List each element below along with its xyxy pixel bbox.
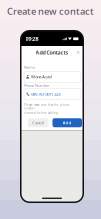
staticText: Please make sure that the phone number (24, 103, 70, 110)
staticText: Add (63, 120, 72, 125)
staticText: Create new contact (7, 5, 94, 17)
staticText: Name (24, 64, 35, 70)
button[interactable]: Cancel (28, 118, 48, 127)
staticText: Phone Number (24, 83, 50, 88)
staticText: Mona Azad (31, 74, 51, 79)
button[interactable]: Close (75, 48, 81, 56)
staticText: is correct before adding. (24, 111, 59, 115)
staticText: 09:28 (25, 35, 38, 42)
staticText: Cancel (32, 120, 44, 125)
staticText: Add Contacts (35, 49, 68, 56)
button[interactable]: Add (52, 118, 82, 127)
staticText: 089 761 0011 223 (31, 91, 60, 97)
